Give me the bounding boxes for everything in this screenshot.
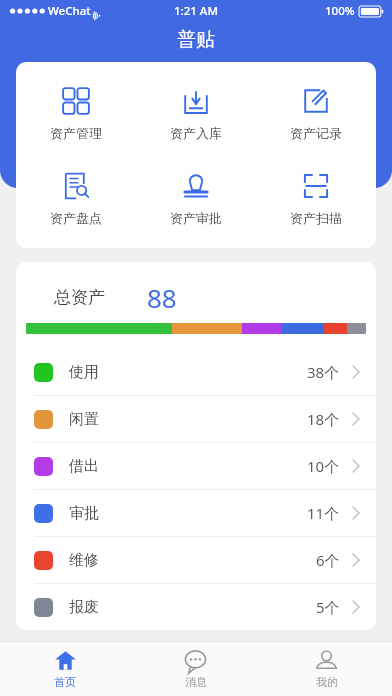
button[interactable]: 资产审批: [136, 167, 256, 230]
button[interactable]: 资产扫描: [256, 167, 376, 230]
staticText: 资产入库: [170, 125, 222, 141]
staticText: 38个: [307, 362, 340, 382]
staticText: 资产盘点: [50, 210, 102, 226]
button[interactable]: 首页: [0, 642, 130, 696]
staticText: 资产审批: [170, 210, 222, 226]
staticText: 资产扫描: [290, 210, 342, 226]
staticText: 88: [147, 280, 177, 315]
staticText: 资产记录: [290, 125, 342, 141]
staticText: 首页: [54, 675, 76, 689]
staticText: 5个: [316, 597, 340, 617]
staticText: 报废: [69, 598, 99, 617]
staticText: 审批: [69, 504, 99, 523]
staticText: 消息: [185, 675, 207, 689]
button[interactable]: 维修: [16, 537, 376, 583]
staticText: 100%: [325, 3, 355, 19]
button[interactable]: 资产盘点: [16, 167, 136, 230]
button[interactable]: 我的: [261, 642, 392, 696]
staticText: 资产管理: [50, 125, 102, 141]
staticText: 我的: [316, 675, 338, 689]
button[interactable]: 审批: [16, 490, 376, 536]
staticText: 18个: [307, 409, 340, 429]
staticText: 1:21 AM: [174, 3, 218, 19]
button[interactable]: 资产入库: [136, 82, 256, 145]
button[interactable]: 闲置: [16, 396, 376, 442]
staticText: 维修: [69, 551, 99, 570]
staticText: 使用: [69, 363, 99, 382]
button[interactable]: 使用: [16, 349, 376, 395]
staticText: 闲置: [69, 410, 99, 429]
button[interactable]: 借出: [16, 443, 376, 489]
staticText: 6个: [316, 550, 340, 570]
staticText: 11个: [307, 503, 340, 523]
staticText: 总资产: [54, 287, 105, 308]
button[interactable]: 消息: [130, 642, 261, 696]
staticText: WeChat: [48, 3, 91, 19]
staticText: 普贴: [0, 28, 392, 52]
button[interactable]: 报废: [16, 584, 376, 630]
staticText: 借出: [69, 457, 99, 476]
button[interactable]: 资产管理: [16, 82, 136, 145]
button[interactable]: 资产记录: [256, 82, 376, 145]
staticText: 10个: [307, 456, 340, 476]
